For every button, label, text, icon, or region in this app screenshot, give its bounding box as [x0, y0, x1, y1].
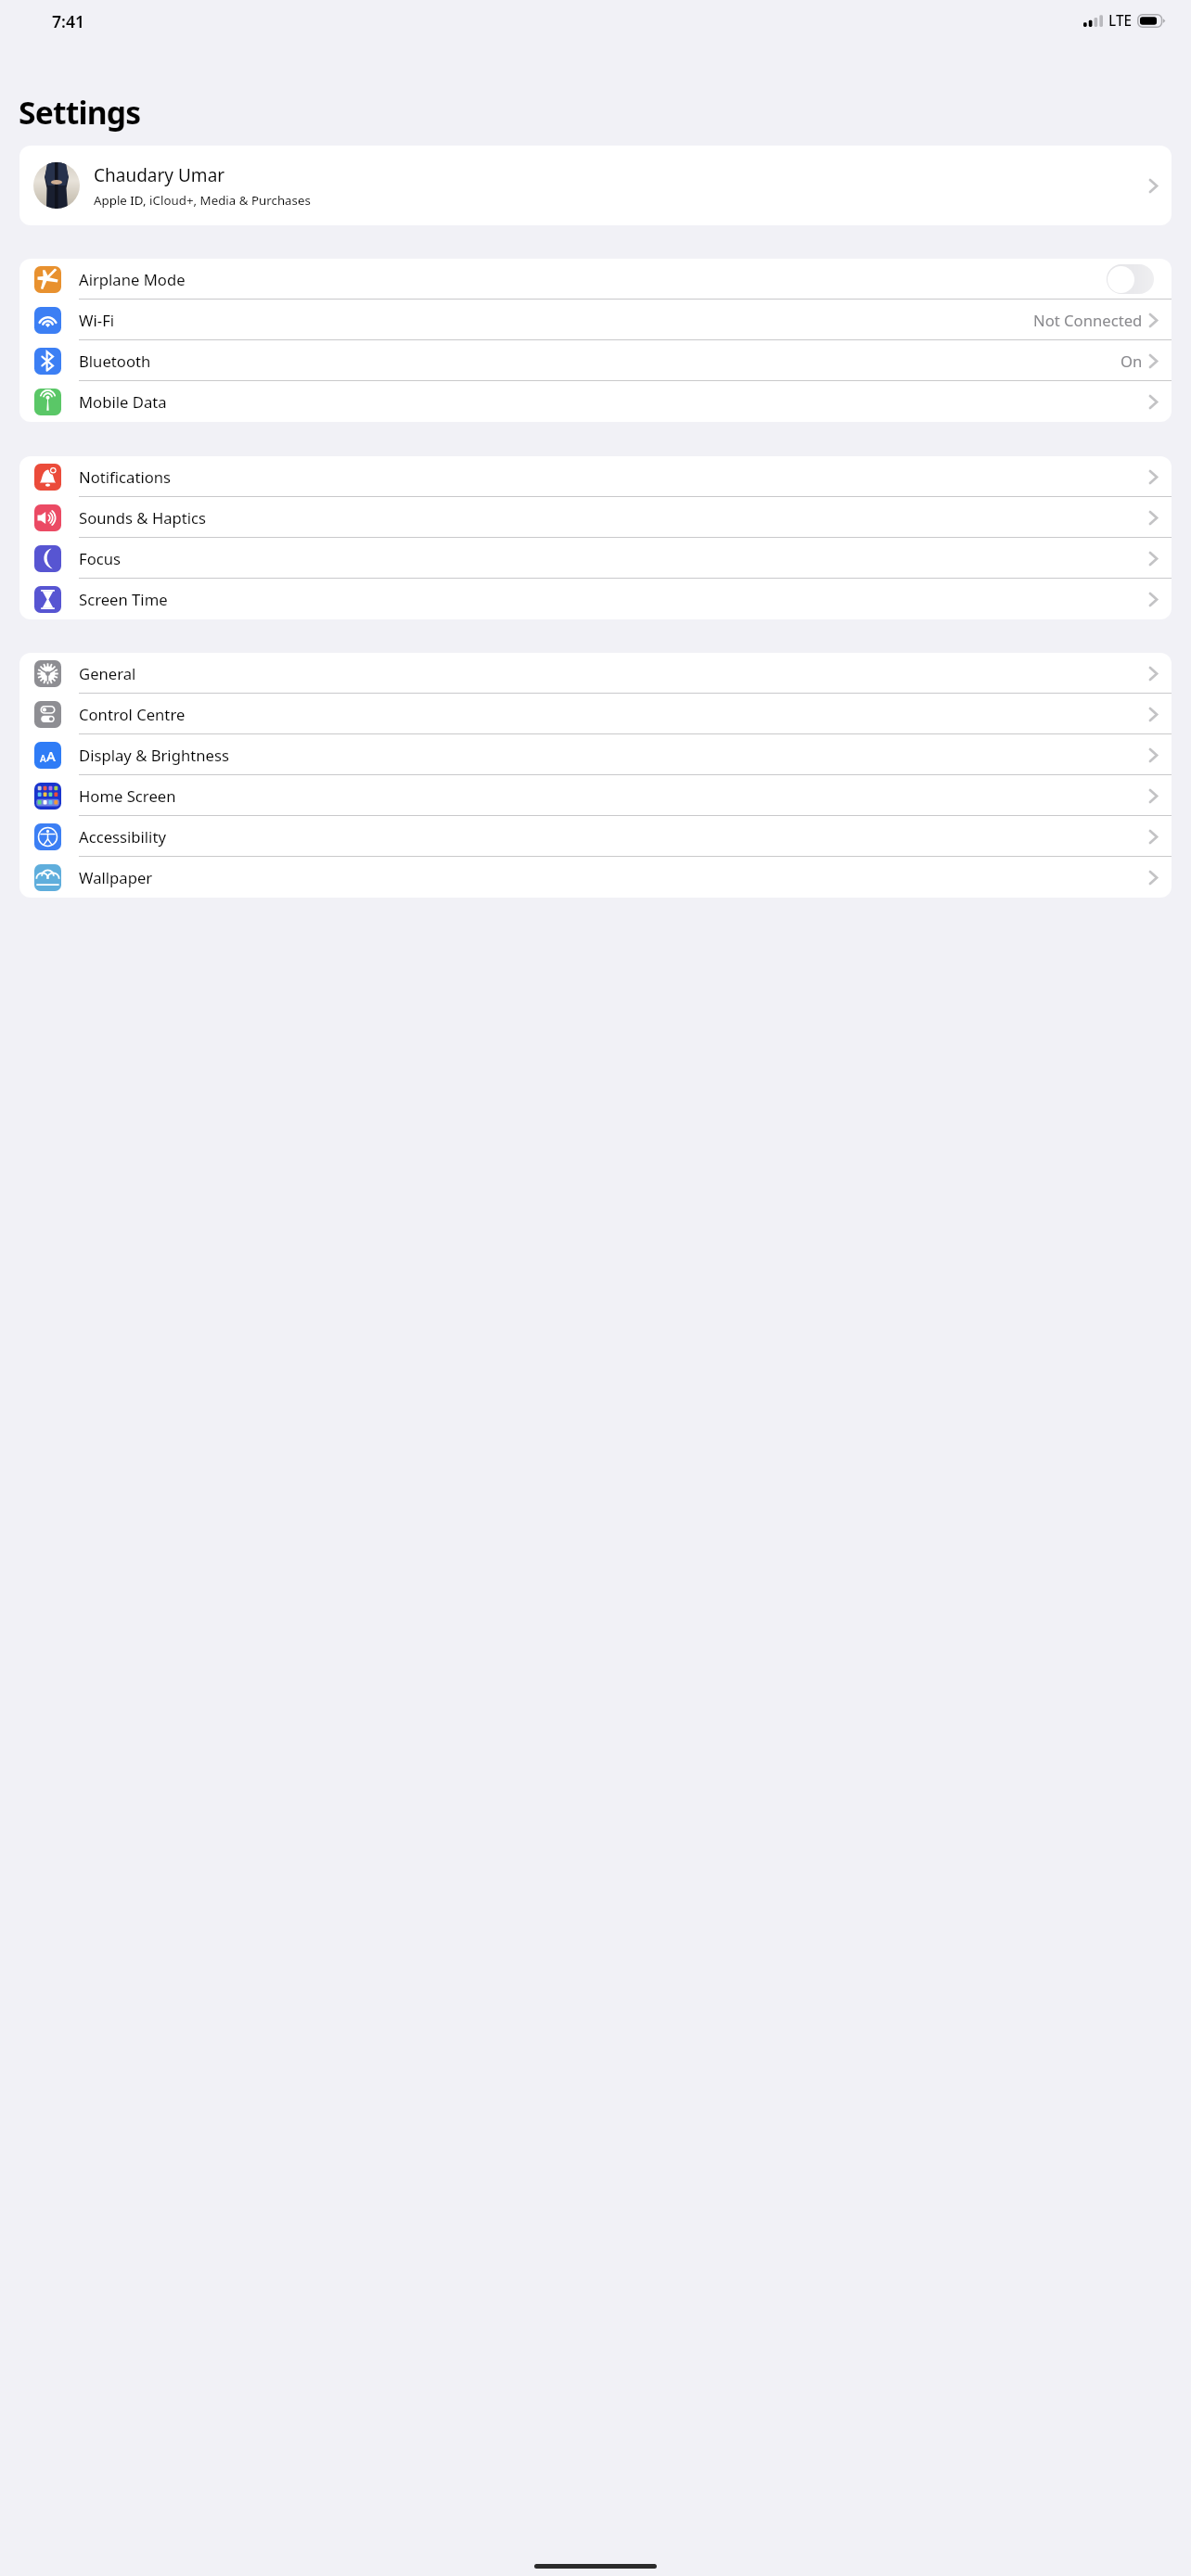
staticText: Sounds & Haptics [79, 507, 207, 529]
button[interactable]: Airplane Mode [19, 259, 1172, 300]
staticText: General [79, 663, 136, 684]
staticText: Control Centre [79, 704, 186, 725]
staticText: Chaudary Umar [94, 163, 225, 187]
button[interactable]: Accessibility [19, 816, 1172, 857]
staticText: Wallpaper [79, 867, 153, 888]
staticText: Settings [19, 91, 141, 134]
button[interactable]: Control Centre [19, 694, 1172, 734]
staticText: Display & Brightness [79, 745, 229, 766]
staticText: Screen Time [79, 589, 168, 610]
button[interactable]: Airplane Mode toggle, off [1107, 264, 1154, 294]
button[interactable]: Mobile Data [19, 381, 1172, 422]
button[interactable]: Sounds & Haptics [19, 497, 1172, 538]
button[interactable]: Home Screen [19, 775, 1172, 816]
button[interactable]: General [19, 653, 1172, 694]
button[interactable]: A [19, 734, 1172, 775]
staticText: Apple ID, iCloud+, Media & Purchases [94, 192, 311, 209]
staticText: A [46, 746, 56, 765]
staticText: Home Screen [79, 785, 176, 807]
staticText: Focus [79, 548, 121, 569]
button[interactable]: Notifications [19, 456, 1172, 497]
staticText: Wi-Fi [79, 310, 115, 331]
staticText: A [40, 752, 46, 765]
staticText: Bluetooth [79, 351, 151, 372]
button[interactable]: Screen Time [19, 579, 1172, 619]
staticText: On [1121, 351, 1143, 372]
staticText: Notifications [79, 466, 172, 488]
button[interactable]: Wallpaper [19, 857, 1172, 898]
staticText: Airplane Mode [79, 269, 186, 290]
staticText: Not Connected [1033, 310, 1143, 331]
button[interactable]: Wi-Fi [19, 300, 1172, 340]
staticText: Accessibility [79, 826, 166, 848]
staticText: LTE [1108, 11, 1133, 31]
staticText: Mobile Data [79, 391, 167, 413]
staticText: 7:41 [52, 10, 85, 32]
button[interactable]: Focus [19, 538, 1172, 579]
button[interactable]: Chaudary Umar [19, 146, 1172, 225]
button[interactable]: Bluetooth [19, 340, 1172, 381]
